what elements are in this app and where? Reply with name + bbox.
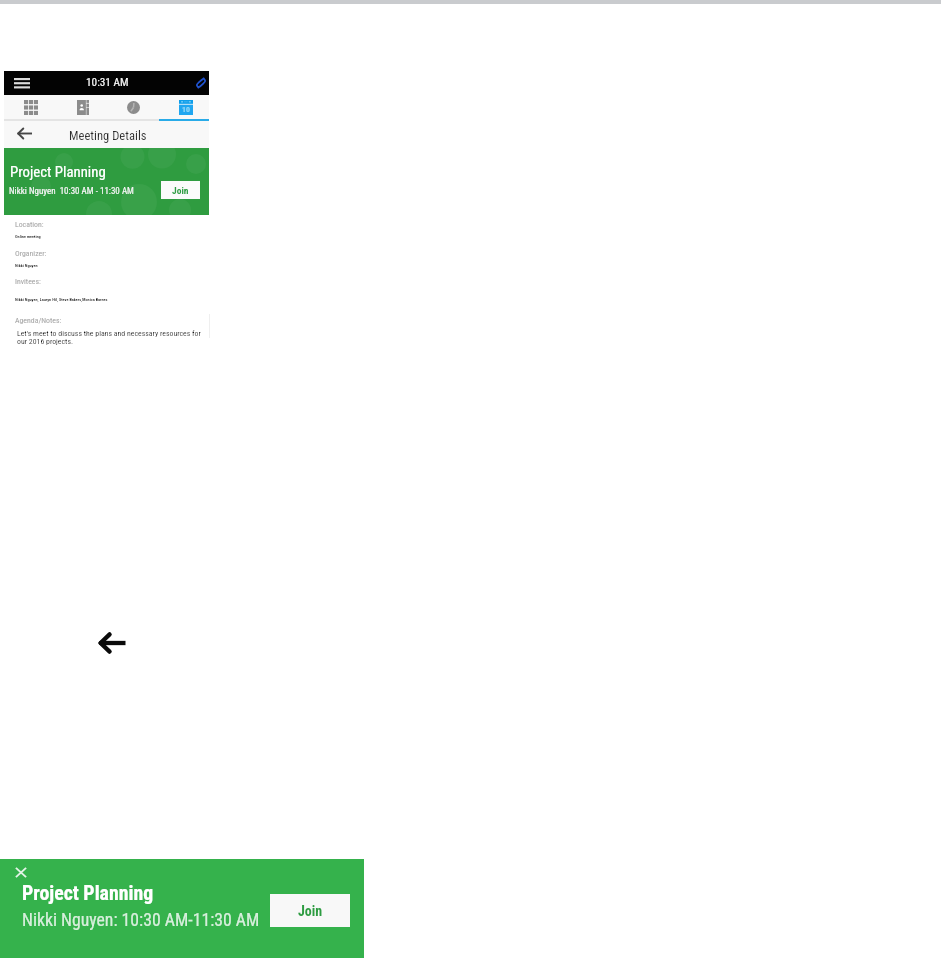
staticText: Project Planning [22,882,154,905]
staticText: Nikki Nguyen: 10:30 AM-11:30 AM [22,910,260,931]
button[interactable]: Dismiss [15,867,27,878]
staticText: Location: [15,220,44,229]
staticText: Invitees: [15,277,41,286]
button[interactable]: Sync status [195,77,207,89]
staticText: Project Planning [10,163,106,180]
button[interactable]: Calendar [158,95,209,121]
staticText: Meeting Details [69,128,147,143]
button[interactable]: Contacts [56,95,107,121]
button[interactable]: Back [17,128,32,139]
staticText: Let's meet to discuss the plans and nece… [17,329,205,346]
staticText: Join [298,903,323,919]
staticText: Nikki Nguyen, Lauryn Hil, Steve Bakers,M… [15,297,108,302]
button[interactable]: Join [270,894,350,927]
staticText: Nikki Nguyen [15,263,38,268]
staticText: 10 [182,105,190,114]
button[interactable]: Menu [14,78,30,88]
button[interactable]: Join [161,181,200,199]
button[interactable]: Dismiss [0,859,364,958]
staticText: Nikki Nguyen 10:30 AM - 11:30 AM [9,186,134,197]
button[interactable]: Apps [4,95,56,121]
button[interactable]: Clock [107,95,158,121]
staticText: Organizer: [15,249,47,258]
staticText: Online meeting [15,234,41,239]
button[interactable]: Back [98,632,126,654]
staticText: 10:31 AM [86,76,129,89]
staticText: Agenda/Notes: [15,316,62,325]
staticText: Join [172,185,189,196]
